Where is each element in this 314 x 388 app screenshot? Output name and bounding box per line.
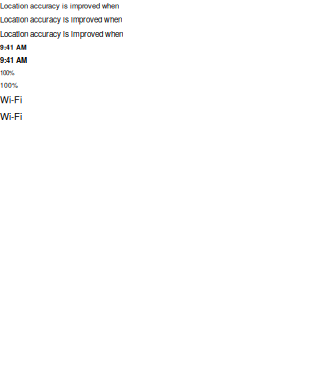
staticText: Location accuracy is improved when xyxy=(0,14,122,25)
staticText: 9:41 AM xyxy=(0,42,27,52)
staticText: 100% xyxy=(0,68,14,77)
staticText: Location accuracy is improved when xyxy=(0,28,123,39)
staticText: 9:41 AM xyxy=(0,55,27,65)
staticText: Wi-Fi xyxy=(0,109,22,123)
staticText: 100% xyxy=(0,80,18,90)
staticText: Wi-Fi xyxy=(0,93,22,106)
staticText: Location accuracy is improved when xyxy=(0,0,119,11)
